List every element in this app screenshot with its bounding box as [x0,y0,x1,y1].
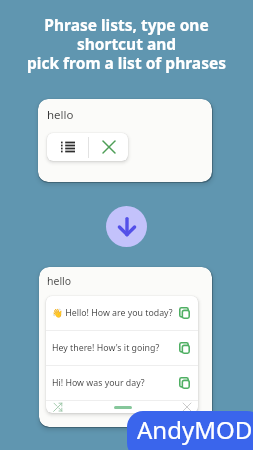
button[interactable]: Shuffle [53,402,63,412]
button[interactable]: Copy [179,377,191,390]
staticText: 👋 Hello! How are you today? [52,307,179,319]
button[interactable]: Close [89,133,128,161]
button[interactable]: Close list [183,403,191,411]
button[interactable]: Hi! How was your day? [52,366,191,400]
staticText: Hey there! How's it going? [52,342,179,354]
staticText: Phrase lists, type one shortcut and pick… [27,14,226,73]
button[interactable]: Copy [179,307,191,320]
staticText: hello [47,274,72,288]
button[interactable]: Down [106,206,147,247]
button[interactable]: Phrase list [47,133,88,161]
button[interactable]: Hey there! How's it going? [52,331,191,365]
button[interactable]: Copy [179,342,191,355]
button[interactable]: 👋 Hello! How are you today? [52,296,191,330]
button[interactable]: AndyMOD [127,411,253,450]
staticText: Hi! How was your day? [52,377,179,389]
staticText: AndyMOD [137,413,253,446]
staticText: hello [47,107,74,123]
